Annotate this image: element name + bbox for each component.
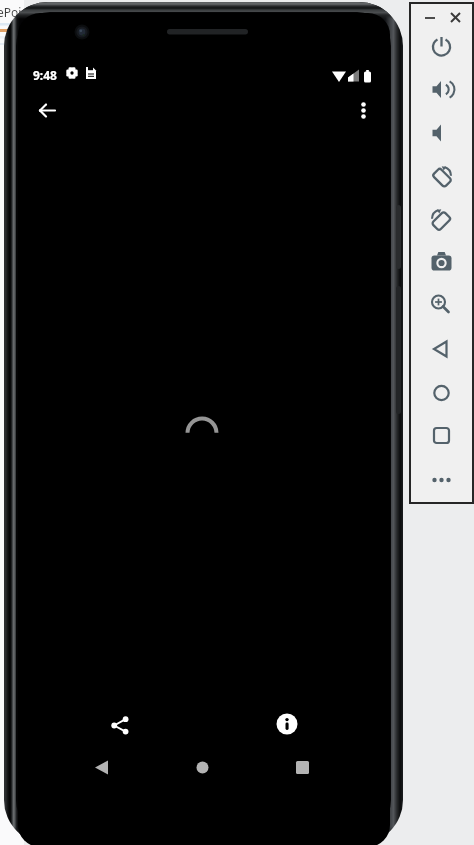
button[interactable]: Navigate up [27, 89, 67, 129]
button[interactable]: Information [267, 704, 307, 744]
staticText: ePoin [0, 4, 29, 20]
staticText: 9:48 [33, 67, 57, 83]
button[interactable]: More options [345, 89, 385, 129]
button[interactable]: Share [100, 705, 140, 745]
